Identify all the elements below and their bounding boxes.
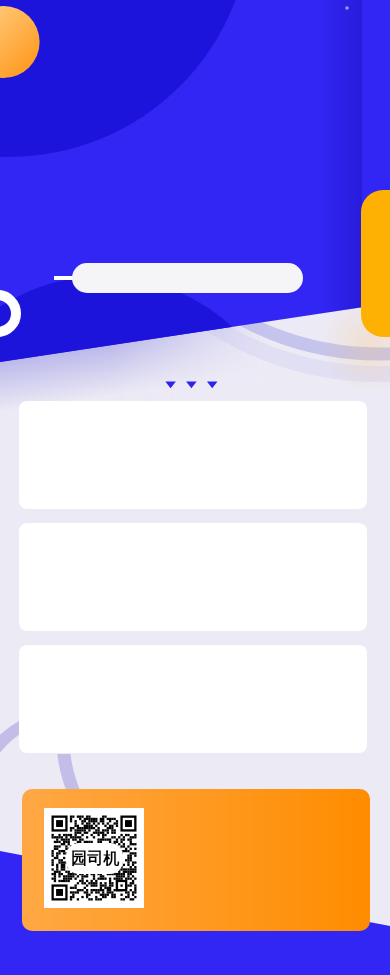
staticText: 园司机 bbox=[71, 849, 119, 869]
button[interactable]: Promotion bbox=[22, 789, 370, 931]
button[interactable]: Search bbox=[72, 263, 303, 293]
button[interactable]: Side tab bbox=[361, 190, 390, 337]
